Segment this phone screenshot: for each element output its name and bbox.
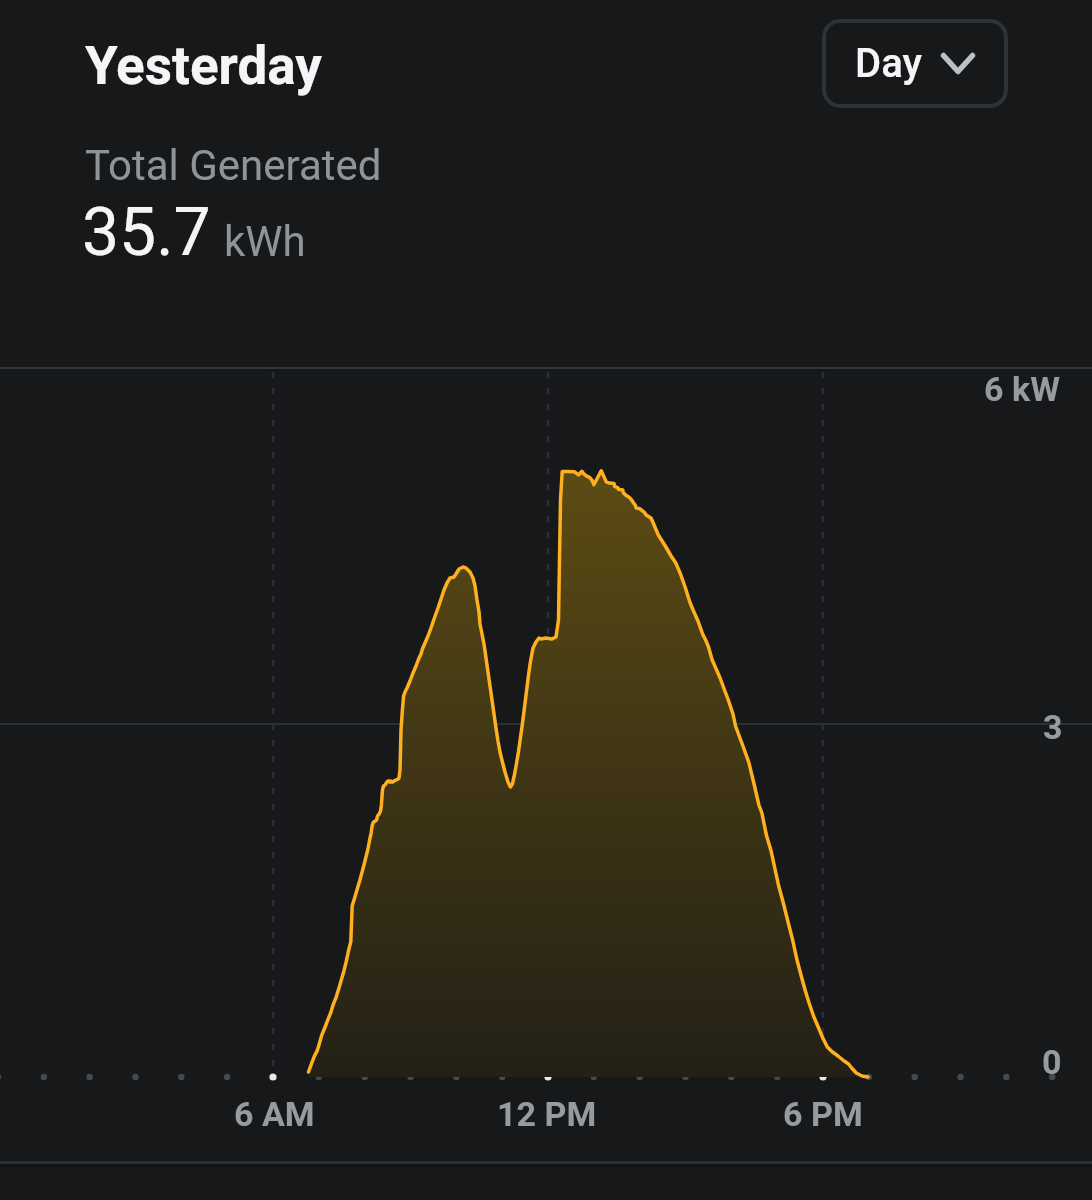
button[interactable]: Yesterday (85, 35, 382, 271)
staticText: 12 PM (497, 1094, 597, 1134)
staticText: 6 AM (234, 1094, 315, 1134)
staticText: 35.7 (82, 194, 211, 271)
staticText: 6 kW (984, 369, 1060, 409)
staticText: kWh (224, 217, 306, 266)
staticText: Day (855, 40, 922, 87)
staticText: 0 (1042, 1042, 1062, 1082)
staticText: 6 PM (783, 1094, 863, 1134)
staticText: Yesterday (85, 35, 322, 97)
button[interactable]: Day, change time range (822, 19, 1008, 108)
staticText: Total Generated (85, 141, 382, 190)
staticText: 3 (1043, 707, 1063, 747)
